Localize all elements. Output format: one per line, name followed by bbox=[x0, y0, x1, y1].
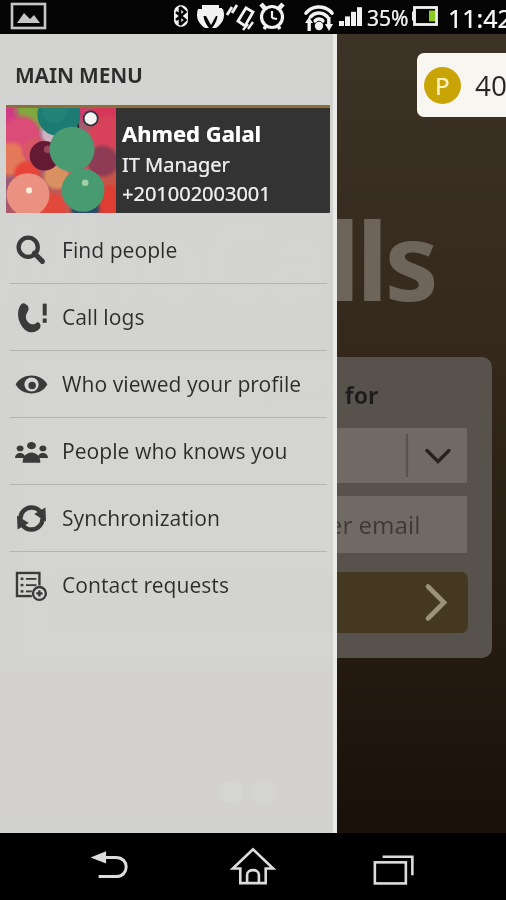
staticText: 35% bbox=[367, 4, 409, 33]
button[interactable]: Back bbox=[80, 836, 142, 898]
button[interactable]: Find people bbox=[0, 217, 337, 283]
staticText: IT Manager bbox=[122, 151, 230, 178]
staticText: P bbox=[435, 69, 450, 102]
button[interactable]: Who viewed your profile bbox=[0, 351, 337, 417]
staticText: MAIN MENU bbox=[15, 61, 143, 90]
button[interactable]: P bbox=[417, 53, 506, 117]
staticText: Search for bbox=[262, 379, 379, 410]
staticText: Enter email bbox=[292, 508, 421, 541]
button[interactable]: Ahmed Galal bbox=[6, 105, 330, 213]
button[interactable]: Contact requests bbox=[0, 552, 337, 618]
staticText: Call logs bbox=[62, 303, 145, 332]
button[interactable] bbox=[50, 572, 468, 633]
staticText: 40 bbox=[475, 66, 506, 104]
button[interactable]: Home bbox=[222, 836, 284, 898]
button[interactable]: People who knows you bbox=[0, 418, 337, 484]
staticText: Contact requests bbox=[62, 571, 229, 600]
staticText: 11:42 bbox=[448, 1, 506, 35]
staticText: Ahmed Galal bbox=[122, 118, 262, 148]
staticText: WhoCalls bbox=[0, 186, 435, 333]
staticText: Synchronization bbox=[62, 504, 220, 533]
button[interactable]: Call logs bbox=[0, 284, 337, 350]
staticText: +201002003001 bbox=[122, 180, 271, 207]
staticText: Who viewed your profile bbox=[62, 370, 302, 399]
staticText: People who knows you bbox=[62, 437, 288, 466]
button[interactable]: Recent apps bbox=[364, 836, 426, 898]
staticText: Find people bbox=[62, 236, 178, 265]
button[interactable]: Synchronization bbox=[0, 485, 337, 551]
